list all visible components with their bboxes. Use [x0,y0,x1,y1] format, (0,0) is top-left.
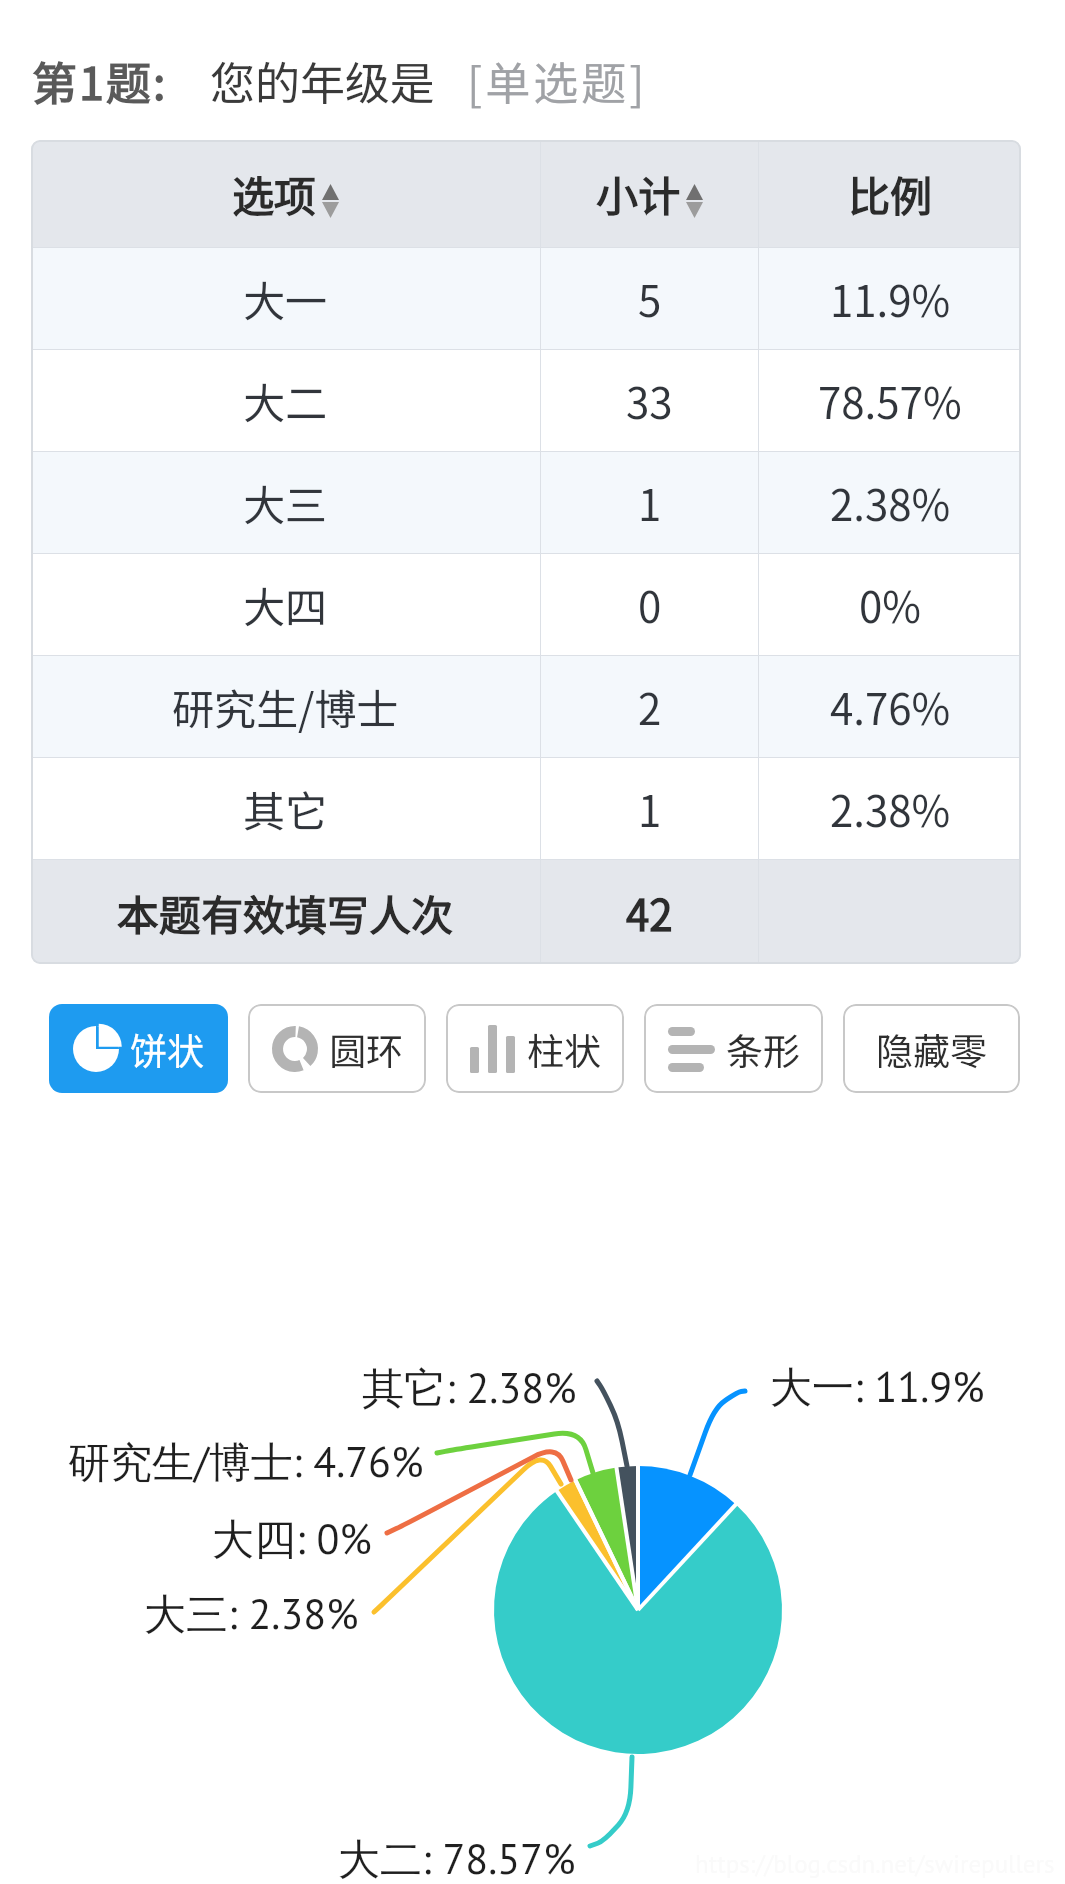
staticText: 本题有效填写人次 [117,882,454,943]
staticText: 比例 [848,163,933,224]
button[interactable]: 柱状 [446,1004,624,1093]
staticText: 0% [859,574,921,635]
staticText: 78.57% [818,370,962,431]
button[interactable]: 按选项 排序 [31,140,540,247]
staticText: 您的年级是 [210,48,436,113]
staticText: 42 [626,882,673,943]
staticText: 0 [638,574,662,635]
staticText: 隐藏零 [876,1022,987,1076]
staticText: 大四 [243,574,328,635]
staticText: 饼状 [130,1022,204,1076]
staticText: 第1题: [32,48,168,113]
staticText: 小计 [596,163,681,224]
staticText: 选项 [232,163,317,224]
button[interactable]: 按小计 排序 [541,140,758,247]
staticText: 2 [638,676,662,737]
button[interactable]: 圆环 [248,1004,426,1093]
staticText: 大二 [243,370,328,431]
staticText: 大三 [243,472,328,533]
staticText: 研究生/博士 [172,676,399,737]
staticText: 圆环 [329,1022,403,1076]
staticText: 1 [638,472,662,533]
staticText: 1 [638,778,662,839]
staticText: 柱状 [527,1022,601,1076]
staticText: 条形 [726,1022,800,1076]
staticText: 2.38% [830,472,951,533]
staticText: 其它 [243,778,328,839]
button[interactable]: 饼状 [49,1004,228,1093]
staticText: 11.9% [830,268,951,329]
staticText: 4.76% [830,676,951,737]
button[interactable]: 隐藏零 [843,1004,1020,1093]
staticText: 2.38% [830,778,951,839]
staticText: 5 [638,268,662,329]
button[interactable]: 条形 [644,1004,823,1093]
staticText: [单选题] [467,48,648,113]
staticText: 33 [626,370,673,431]
staticText: 大一 [243,268,328,329]
